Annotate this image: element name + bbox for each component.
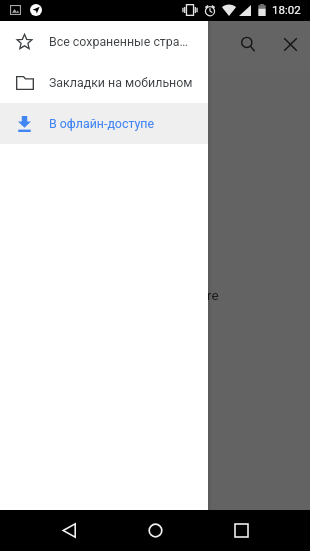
button[interactable]: Search bbox=[232, 28, 264, 60]
button[interactable]: В офлайн-доступе bbox=[0, 103, 208, 144]
button[interactable]: Закладки на мобильном bbox=[0, 62, 208, 103]
staticText: Закладки на мобильном bbox=[49, 75, 193, 90]
staticText: В офлайн-доступе bbox=[49, 116, 155, 131]
button[interactable]: Close bbox=[274, 28, 306, 60]
button[interactable]: Recents bbox=[220, 510, 262, 551]
staticText: re bbox=[207, 287, 219, 303]
staticText: 18:02 bbox=[272, 3, 301, 16]
button[interactable]: Все сохраненные стра… bbox=[0, 21, 208, 62]
button[interactable]: Home bbox=[134, 510, 176, 551]
button[interactable]: Back bbox=[48, 510, 90, 551]
staticText: Все сохраненные стра… bbox=[49, 34, 188, 49]
